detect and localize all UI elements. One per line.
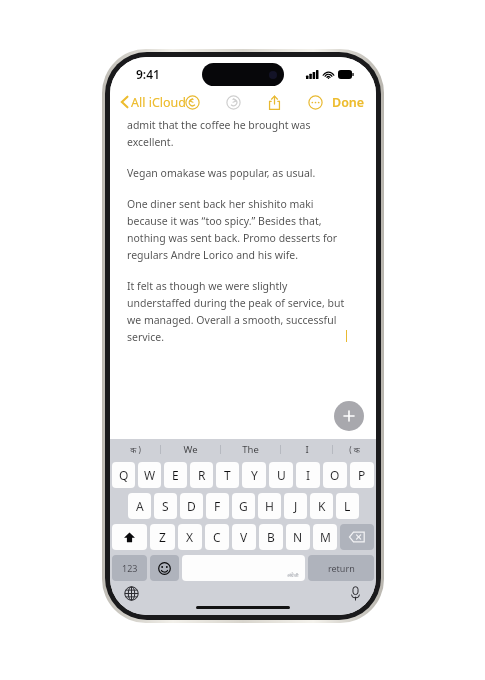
staticText: T [224,467,231,483]
staticText: 9:41 [136,66,160,82]
staticText: O [330,467,340,483]
button[interactable]: ( क [333,439,376,459]
button[interactable]: E [164,462,187,488]
button[interactable]: S [154,493,177,519]
button[interactable]: क ) [110,439,160,459]
button[interactable]: Space [182,555,305,581]
button[interactable]: Add attachment [334,401,364,431]
button[interactable]: Dictate [346,584,364,602]
button[interactable]: J [284,493,307,519]
staticText: One diner sent back her shishito maki be… [127,197,338,262]
button[interactable]: R [190,462,213,488]
staticText: Z [159,529,166,545]
button[interactable]: Change keyboard [122,584,140,602]
button[interactable]: V [232,524,256,550]
staticText: W [144,467,156,483]
button[interactable]: I [281,439,332,459]
button[interactable]: Backspace [340,524,374,550]
staticText: All iCloud [131,94,187,111]
staticText: X [186,529,194,545]
staticText: We [183,443,198,456]
staticText: F [214,498,221,514]
button[interactable]: We [161,439,220,459]
button[interactable]: All iCloud [110,89,191,115]
staticText: I [306,467,311,483]
button[interactable]: N [286,524,310,550]
button[interactable]: G [232,493,255,519]
button[interactable]: K [310,493,333,519]
button[interactable]: return [308,555,374,581]
staticText: Y [251,467,258,483]
staticText: Done [332,94,365,111]
staticText: C [213,529,221,545]
staticText: H [265,498,274,514]
staticText: क ) [130,444,141,455]
button[interactable]: C [205,524,229,550]
staticText: L [344,498,351,514]
staticText: B [267,529,275,545]
button[interactable]: 123 [112,555,147,581]
button[interactable]: B [259,524,283,550]
staticText: J [294,498,298,514]
staticText: S [162,498,169,514]
button[interactable]: F [206,493,229,519]
button[interactable]: U [269,462,293,488]
staticText: N [293,529,303,545]
button[interactable]: I [296,462,320,488]
button[interactable]: P [350,462,374,488]
button[interactable]: Q [112,462,135,488]
staticText: D [187,498,196,514]
button[interactable]: H [258,493,281,519]
button[interactable]: D [180,493,203,519]
staticText: I [305,443,309,456]
staticText: G [239,498,248,514]
staticText: return [328,562,355,574]
staticText: It felt as though we were slightly under… [127,279,345,344]
staticText: A [136,498,144,514]
button[interactable]: X [178,524,202,550]
button[interactable]: A [128,493,151,519]
staticText: K [318,498,326,514]
button[interactable]: W [138,462,161,488]
button[interactable]: Redo [223,92,243,112]
staticText: P [358,467,366,483]
button[interactable]: L [336,493,359,519]
staticText: V [240,529,248,545]
staticText: The [242,443,259,456]
staticText: Q [119,467,129,483]
button[interactable]: Shift [112,524,147,550]
button[interactable]: Z [150,524,175,550]
button[interactable]: O [323,462,347,488]
staticText: 123 [122,562,138,574]
staticText: अंग्रेजी [287,572,299,579]
staticText: E [172,467,179,483]
button[interactable]: Emoji [150,555,179,581]
staticText: U [277,467,286,483]
button[interactable]: The [221,439,280,459]
staticText: admit that the coffee he brought was exc… [127,118,311,149]
button[interactable]: More options [305,92,325,112]
button[interactable]: Share [264,92,284,112]
button[interactable]: Undo [182,92,202,112]
button[interactable]: M [313,524,337,550]
staticText: ( क [349,444,360,455]
button[interactable]: Y [242,462,266,488]
button[interactable]: T [216,462,239,488]
button[interactable]: Done [321,89,376,115]
staticText: M [320,529,331,545]
staticText: R [198,467,206,483]
staticText: Vegan omakase was popular, as usual. [127,166,316,180]
